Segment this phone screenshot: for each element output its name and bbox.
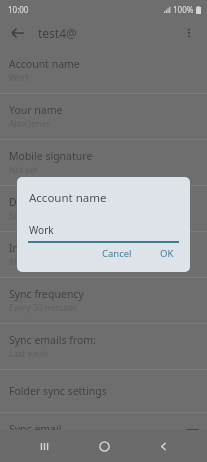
staticText: Sync email for this account (9, 437, 116, 449)
staticText: Folder sync settings (9, 384, 107, 398)
button[interactable]: Sync email (0, 413, 207, 459)
staticText: Last week (9, 348, 49, 360)
staticText: Work (29, 223, 54, 237)
staticText: All (9, 256, 19, 268)
button[interactable]: Back (147, 430, 179, 462)
staticText: Account name (9, 57, 80, 71)
staticText: Mobile signature (9, 149, 93, 163)
button[interactable]: Recents (28, 430, 60, 462)
staticText: Sync frequency (9, 287, 84, 301)
staticText: 10:00 (8, 4, 29, 15)
staticText: Your name (9, 103, 63, 117)
button[interactable]: Your name (0, 94, 207, 140)
button[interactable]: Back (8, 23, 28, 43)
button[interactable]: In-app notifications (0, 232, 207, 278)
button[interactable]: Cancel (96, 244, 138, 263)
staticText: Work (9, 72, 30, 84)
staticText: Not set (9, 164, 38, 176)
staticText: Every 30 minutes (9, 302, 78, 314)
staticText: Account name (29, 190, 107, 206)
other: Sync email (186, 429, 199, 442)
staticText: Default account (9, 195, 87, 209)
button[interactable]: Sync frequency (0, 278, 207, 324)
button[interactable]: OK (154, 244, 180, 263)
staticText: 100% (173, 4, 194, 15)
staticText: Alan Jones (9, 118, 51, 130)
staticText: test4@ (38, 25, 77, 41)
button[interactable]: Home (88, 430, 120, 462)
staticText: Sync emails from: (9, 333, 96, 347)
button[interactable]: Folder sync settings (0, 370, 207, 413)
button[interactable]: Default account (0, 186, 207, 232)
staticText: Sync email (9, 422, 62, 436)
button[interactable]: Sync emails from: (0, 324, 207, 370)
button[interactable]: Account name (0, 48, 207, 94)
staticText: In-app notifications (9, 241, 105, 255)
staticText: Cancel (102, 247, 132, 260)
staticText: Send from this account by default (9, 210, 144, 222)
button[interactable]: Mobile signature (0, 140, 207, 186)
staticText: OK (160, 247, 174, 260)
button[interactable]: More options (179, 23, 199, 43)
